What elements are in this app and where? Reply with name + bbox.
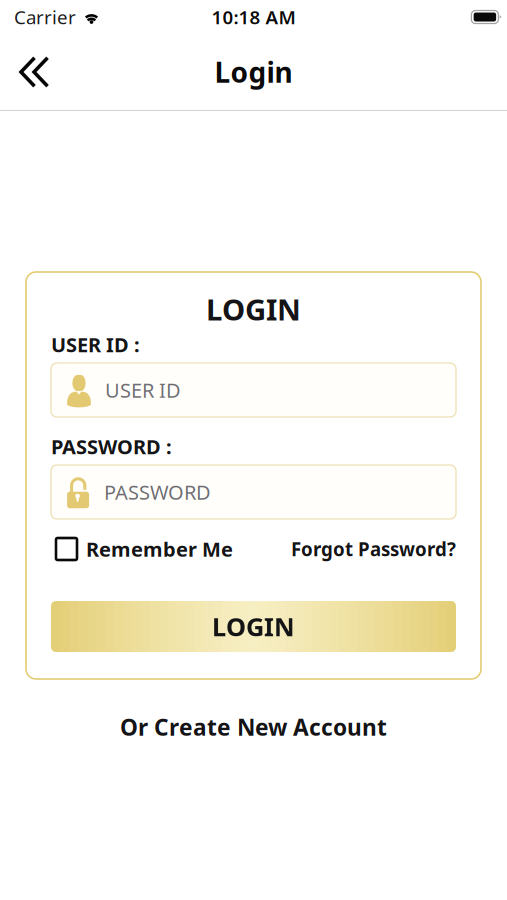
button[interactable]: Forgot Password? xyxy=(291,536,456,562)
staticText: 10:18 AM xyxy=(211,5,295,29)
staticText: LOGIN xyxy=(212,610,295,643)
staticText: Or Create New Account xyxy=(120,712,387,742)
staticText: PASSWORD : xyxy=(51,433,172,460)
staticText: PASSWORD xyxy=(104,479,211,505)
button[interactable]: Or Create New Account xyxy=(120,704,387,750)
staticText: USER ID : xyxy=(51,331,140,358)
staticText: Forgot Password? xyxy=(291,537,456,561)
staticText: Remember Me xyxy=(86,536,233,562)
staticText: Carrier xyxy=(14,5,76,29)
button[interactable]: Remember Me xyxy=(51,536,233,562)
staticText: LOGIN xyxy=(206,289,301,328)
button[interactable]: LOGIN xyxy=(51,601,456,652)
button[interactable]: Back xyxy=(7,49,61,95)
staticText: USER ID xyxy=(105,377,181,403)
staticText: Login xyxy=(214,53,292,91)
